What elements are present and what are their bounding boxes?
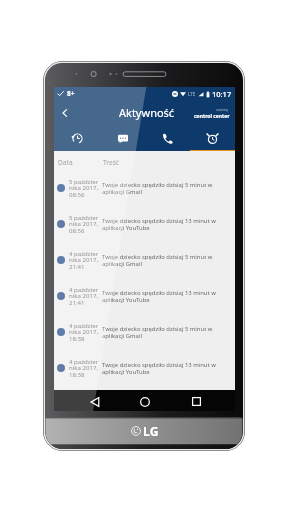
- staticText: 5 paździer nika 2017, 08:56: [69, 213, 99, 235]
- button[interactable]: Back: [82, 391, 108, 412]
- staticText: LTE: [188, 91, 196, 97]
- staticText: control center: [194, 113, 230, 120]
- staticText: Treść: [103, 158, 119, 167]
- button[interactable]: 5 paździer nika 2017, 08:56: [54, 209, 235, 245]
- button[interactable]: 4 paździer nika 2017, 18:38: [54, 317, 235, 353]
- staticText: Twoje dziecko spędziło dzisiaj 13 minut …: [102, 289, 216, 304]
- staticText: Twoje dziecko spędziło dzisiaj 13 minut …: [102, 361, 216, 376]
- staticText: 8+: [67, 89, 75, 98]
- button[interactable]: 5 paździer nika 2017, 08:56: [54, 173, 235, 209]
- staticText: Twoje dziecko spędziło dzisiaj 5 minut w…: [102, 181, 213, 196]
- staticText: Twoje dziecko spędziło dzisiaj 5 minut w…: [102, 325, 213, 340]
- staticText: Twoje dziecko spędziło dzisiaj 5 minut w…: [102, 253, 213, 268]
- staticText: Data: [58, 158, 73, 167]
- staticText: 10:17: [212, 89, 232, 99]
- button[interactable]: Home: [132, 391, 158, 412]
- button[interactable]: History: [54, 125, 100, 151]
- staticText: courtesy: [216, 108, 229, 112]
- button[interactable]: Back: [54, 102, 76, 124]
- button[interactable]: 4 paździer nika 2017, 21:41: [54, 281, 235, 317]
- staticText: Twoje dziecko spędziło dzisiaj 13 minut …: [102, 217, 216, 232]
- button[interactable]: 4 paździer nika 2017, 21:41: [54, 245, 235, 281]
- button[interactable]: Messages: [100, 125, 145, 151]
- button[interactable]: Alarms: [190, 125, 235, 151]
- staticText: Aktywność: [119, 105, 175, 120]
- staticText: 4 paździer nika 2017, 21:41: [69, 285, 99, 307]
- staticText: 5 paździer nika 2017, 08:56: [69, 177, 99, 199]
- staticText: LG: [143, 423, 159, 439]
- staticText: 4 paździer nika 2017, 21:41: [69, 249, 99, 271]
- staticText: 4 paździer nika 2017, 18:38: [69, 357, 99, 379]
- button[interactable]: Recents: [183, 391, 209, 412]
- button[interactable]: Calls: [145, 125, 190, 151]
- button[interactable]: 4 paździer nika 2017, 18:38: [54, 353, 235, 389]
- staticText: 4 paździer nika 2017, 18:38: [69, 321, 99, 343]
